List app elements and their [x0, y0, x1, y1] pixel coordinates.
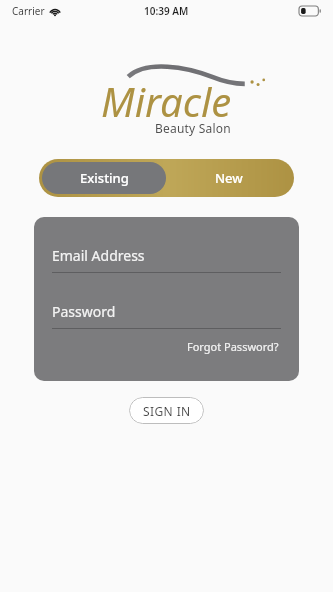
- staticText: Forgot Password?: [187, 339, 279, 354]
- staticText: Existing: [80, 169, 129, 187]
- button[interactable]: Email Address: [52, 239, 281, 272]
- staticText: Beauty Salon: [155, 120, 231, 136]
- staticText: 10:39 AM: [144, 4, 189, 18]
- button[interactable]: Forgot Password?: [185, 337, 281, 356]
- button[interactable]: Existing: [42, 162, 166, 194]
- button[interactable]: Password: [52, 295, 281, 328]
- staticText: Carrier: [12, 4, 45, 18]
- staticText: New: [215, 169, 243, 187]
- button[interactable]: SIGN IN: [129, 397, 204, 424]
- staticText: Email Address: [52, 246, 145, 265]
- staticText: SIGN IN: [143, 403, 191, 419]
- staticText: Miracle: [101, 74, 232, 128]
- button[interactable]: New: [166, 162, 291, 194]
- staticText: Password: [52, 302, 116, 321]
